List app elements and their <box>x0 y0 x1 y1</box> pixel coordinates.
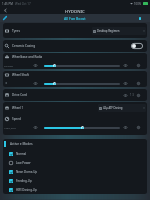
button[interactable]: Info <box>136 93 141 98</box>
staticText: Neon Dome-Up <box>16 170 38 174</box>
button[interactable]: HIFI Dosing-Up <box>9 185 147 194</box>
button[interactable]: Info <box>136 63 141 68</box>
button[interactable]: Back <box>2 7 9 14</box>
button[interactable]: Boost toggle <box>139 17 141 20</box>
staticText: 100%,80% <box>4 126 16 129</box>
staticText: Wheelbase and Radia <box>12 55 43 59</box>
staticText: Low Power <box>16 161 31 165</box>
staticText: HYDONIC <box>65 8 85 14</box>
button[interactable]: Settings <box>123 93 128 98</box>
button[interactable]: Normal <box>9 149 147 158</box>
button[interactable]: Desktop Regimen <box>93 27 145 35</box>
staticText: Feeding-Up <box>16 179 32 183</box>
button[interactable]: Info <box>136 81 141 86</box>
staticText: Wed Oct 17 <box>15 2 31 6</box>
staticText: Wheel 1 <box>12 106 24 110</box>
button[interactable]: Settings <box>123 125 128 130</box>
staticText: Desktop Regimen <box>97 29 120 33</box>
staticText: Normal <box>16 152 27 156</box>
button[interactable]: Switch <box>131 43 143 49</box>
button[interactable]: Settings <box>33 125 38 130</box>
staticText: 1 3 <box>130 93 134 97</box>
staticText: Wheel Shaft <box>12 73 29 77</box>
button[interactable]: Settings <box>33 63 38 68</box>
staticText: 1:45 PM <box>2 2 13 6</box>
staticText: Active e Modes <box>10 142 33 146</box>
button[interactable]: Settings <box>123 81 128 86</box>
staticText: Tyres <box>12 29 20 33</box>
button[interactable]: Feeding-Up <box>9 176 147 185</box>
button[interactable]: Info <box>136 125 141 130</box>
button[interactable]: Neon Dome-Up <box>9 167 147 176</box>
staticText: Ceramic Casing <box>12 44 36 48</box>
staticText: 100% <box>134 2 142 6</box>
staticText: All Fan Boost <box>64 16 86 21</box>
staticText: Drive Cord <box>12 93 27 97</box>
button[interactable]: Edit <box>1 14 9 22</box>
staticText: 28.8mg <box>4 64 13 67</box>
button[interactable]: Settings <box>33 81 38 86</box>
staticText: Speed <box>12 117 21 121</box>
button[interactable]: Settings <box>123 63 128 68</box>
button[interactable]: Low Power <box>9 158 147 167</box>
staticText: HIFI Dosing-Up <box>16 188 37 192</box>
button[interactable]: 42µ ATF Dosing <box>99 104 145 112</box>
staticText: 42µ ATF Dosing <box>103 106 123 110</box>
